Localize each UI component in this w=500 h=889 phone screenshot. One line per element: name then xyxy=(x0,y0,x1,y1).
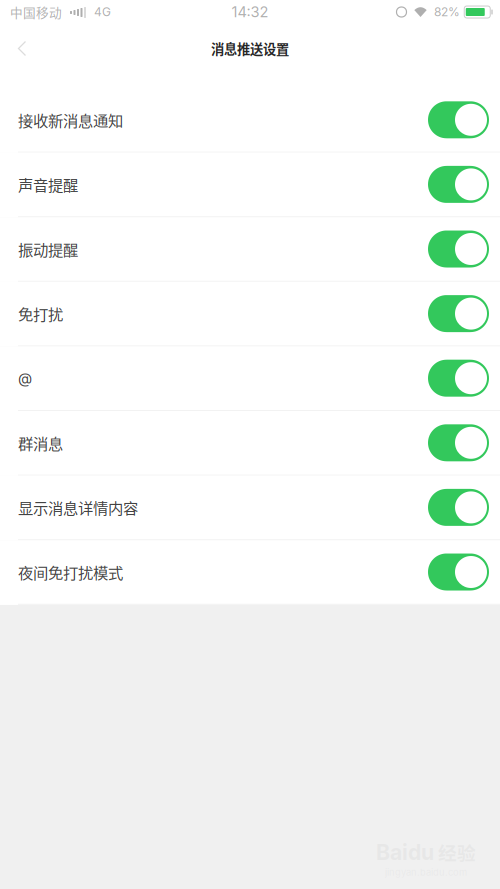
button[interactable]: 接收新消息通知 xyxy=(0,88,500,153)
button[interactable]: Back xyxy=(0,28,44,68)
staticText: 声音提醒 xyxy=(18,173,78,195)
button[interactable]: @ xyxy=(0,346,500,411)
button[interactable]: 群消息 xyxy=(0,411,500,476)
staticText: 振动提醒 xyxy=(18,238,78,260)
button[interactable]: 声音提醒 xyxy=(0,153,500,217)
staticText: 接收新消息通知 xyxy=(18,109,123,131)
staticText: Baidu xyxy=(376,839,434,865)
button[interactable]: 显示消息详情内容 xyxy=(0,476,500,540)
button[interactable]: 振动提醒 xyxy=(0,217,500,282)
staticText: 免打扰 xyxy=(18,302,63,325)
staticText: 82% xyxy=(434,5,460,19)
staticText: 14:32 xyxy=(231,3,268,21)
staticText: 夜间免打扰模式 xyxy=(18,561,123,583)
staticText: 消息推送设置 xyxy=(211,39,289,58)
button[interactable]: 免打扰 xyxy=(0,282,500,346)
staticText: @ xyxy=(18,369,32,387)
staticText: 经验 xyxy=(438,839,476,866)
staticText: 4G xyxy=(94,5,111,19)
staticText: 群消息 xyxy=(18,432,63,454)
button[interactable]: 夜间免打扰模式 xyxy=(0,540,500,605)
staticText: 显示消息详情内容 xyxy=(18,496,138,518)
staticText: 中国移动 xyxy=(10,3,62,21)
